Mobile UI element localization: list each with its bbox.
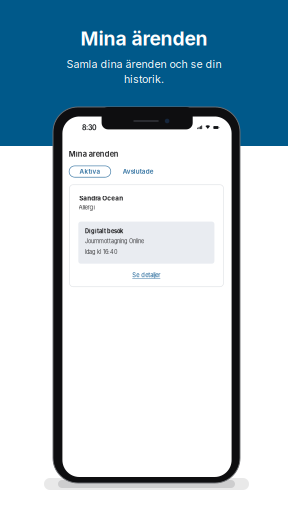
staticText: Digitalt besök xyxy=(85,228,123,235)
staticText: Mina ärenden xyxy=(69,149,119,158)
staticText: Avslutade xyxy=(123,168,154,175)
staticText: Mina ärenden xyxy=(80,27,207,50)
button[interactable]: Avslutade xyxy=(117,166,159,177)
staticText: historik. xyxy=(124,73,164,85)
staticText: Se detaljer xyxy=(132,272,160,278)
staticText: Sandra Ocean xyxy=(79,194,123,202)
staticText: 8:30 xyxy=(82,123,97,132)
button[interactable]: Se detaljer xyxy=(126,270,166,280)
staticText: Aktiva xyxy=(79,168,100,175)
staticText: Journmottagning Online xyxy=(85,238,144,244)
button[interactable]: Aktiva xyxy=(69,166,111,177)
staticText: Samla dina ärenden och se din xyxy=(66,58,221,71)
staticText: Idag kl 16:40 xyxy=(85,249,117,255)
staticText: Allergi xyxy=(78,204,94,211)
